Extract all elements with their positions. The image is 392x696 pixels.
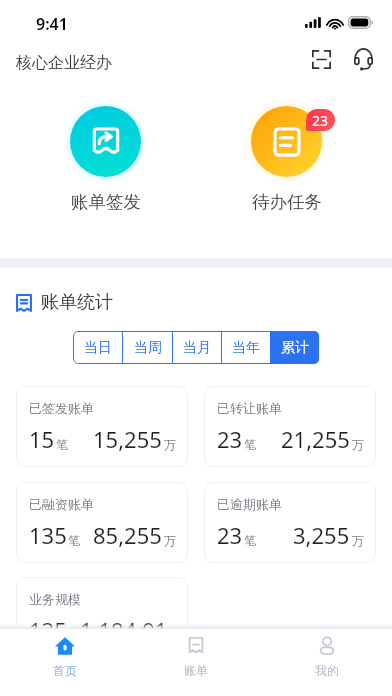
staticText: 已融资账单 <box>29 496 94 512</box>
button[interactable]: 当月 <box>173 331 221 364</box>
button[interactable]: 累计 <box>271 331 319 364</box>
staticText: 23 <box>217 520 243 550</box>
staticText: 账单签发 <box>71 191 141 213</box>
button[interactable]: 当日 <box>73 331 122 364</box>
staticText: 3,255 <box>293 520 350 550</box>
staticText: 已逾期账单 <box>217 496 282 512</box>
staticText: 笔 <box>244 533 256 548</box>
staticText: 万 <box>170 628 176 643</box>
staticText: 21,255 <box>281 424 350 454</box>
staticText: 账单统计 <box>41 291 113 314</box>
staticText: 笔 <box>68 533 80 548</box>
staticText: 万 <box>352 533 364 548</box>
staticText: 1,184,91 <box>80 615 168 645</box>
button[interactable]: 业务规模 <box>16 577 188 658</box>
staticText: 我的 <box>315 663 339 678</box>
staticText: 首页 <box>53 663 77 678</box>
staticText: 当月 <box>183 339 211 357</box>
staticText: 待办任务 <box>252 191 322 213</box>
staticText: 万 <box>164 533 176 548</box>
button[interactable]: 已逾期账单 <box>204 482 376 563</box>
staticText: 15 <box>29 424 55 454</box>
staticText: 万 <box>164 437 176 452</box>
staticText: 15,255 <box>93 424 162 454</box>
staticText: 账单 <box>184 663 208 678</box>
staticText: 核心企业经办 <box>16 53 112 73</box>
staticText: 累计 <box>281 339 309 357</box>
button[interactable]: 已转让账单 <box>204 386 376 467</box>
button[interactable]: Scan QR code <box>305 43 337 75</box>
staticText: 万 <box>352 437 364 452</box>
staticText: 23 <box>312 111 329 130</box>
staticText: 业务规模 <box>29 591 81 607</box>
staticText: 笔 <box>68 628 80 643</box>
staticText: 已转让账单 <box>217 400 282 416</box>
staticText: 笔 <box>244 437 256 452</box>
staticText: 已签发账单 <box>29 400 94 416</box>
button[interactable]: 我的 <box>261 629 392 696</box>
staticText: 23 <box>217 424 243 454</box>
button[interactable]: 当周 <box>123 331 172 364</box>
staticText: 135 <box>29 520 67 550</box>
button[interactable]: 23 <box>251 106 322 213</box>
staticText: 9:41 <box>36 13 68 35</box>
button[interactable]: 已签发账单 <box>16 386 188 467</box>
staticText: 当周 <box>134 339 162 357</box>
button[interactable]: 已融资账单 <box>16 482 188 563</box>
button[interactable]: 当年 <box>222 331 270 364</box>
staticText: 当日 <box>84 339 112 357</box>
button[interactable]: 账单签发 <box>70 106 141 213</box>
staticText: 135 <box>29 615 67 645</box>
staticText: 85,255 <box>93 520 162 550</box>
button[interactable]: 首页 <box>0 629 130 696</box>
staticText: 当年 <box>232 339 260 357</box>
staticText: 笔 <box>56 437 68 452</box>
button[interactable]: 账单 <box>130 629 261 696</box>
button[interactable]: Customer support <box>347 43 379 75</box>
